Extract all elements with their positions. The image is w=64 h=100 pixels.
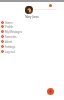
button[interactable]: Favorites: [0, 34, 64, 39]
staticText: My Messages: [5, 30, 22, 34]
button[interactable]: Home: [0, 20, 64, 25]
button[interactable]: Add: [47, 88, 54, 95]
button[interactable]: Profile: [0, 24, 64, 29]
button[interactable]: My Messages: [0, 29, 64, 34]
staticText: Home: [5, 21, 13, 25]
button[interactable]: Alerts: [0, 39, 64, 44]
staticText: Alerts: [5, 40, 13, 44]
button[interactable]: Edit profile: [48, 3, 52, 7]
staticText: Settings: [5, 45, 16, 49]
staticText: Log out: [5, 50, 15, 54]
staticText: Favorites: [5, 35, 17, 39]
staticText: Profile: [5, 25, 14, 29]
button[interactable]: Profile photo: [25, 6, 33, 14]
button[interactable]: Settings: [0, 44, 64, 49]
staticText: Mary Jones: [25, 15, 39, 19]
button[interactable]: Log out: [0, 49, 64, 54]
